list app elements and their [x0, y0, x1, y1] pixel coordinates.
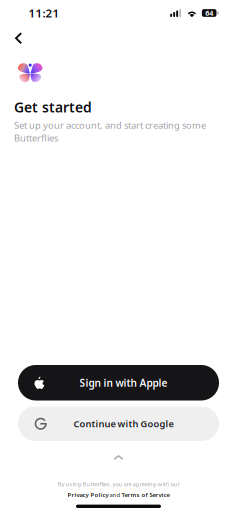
button[interactable]: Continue with Google: [18, 406, 219, 441]
staticText: By using Butterflies, you are agreeing w…: [57, 480, 179, 488]
staticText: Get started: [14, 98, 92, 117]
staticText: Continue with Google: [73, 417, 173, 430]
button[interactable]: Sign in with Apple: [18, 365, 219, 400]
staticText: Set up your account, and start creating …: [14, 119, 206, 144]
staticText: Sign in with Apple: [79, 376, 167, 390]
staticText: 11:21: [28, 5, 59, 21]
staticText: 64: [205, 8, 213, 18]
button[interactable]: Back: [0, 26, 32, 50]
button[interactable]: Show more: [108, 450, 129, 465]
staticText: Privacy Policy and Terms of Service: [67, 491, 169, 499]
